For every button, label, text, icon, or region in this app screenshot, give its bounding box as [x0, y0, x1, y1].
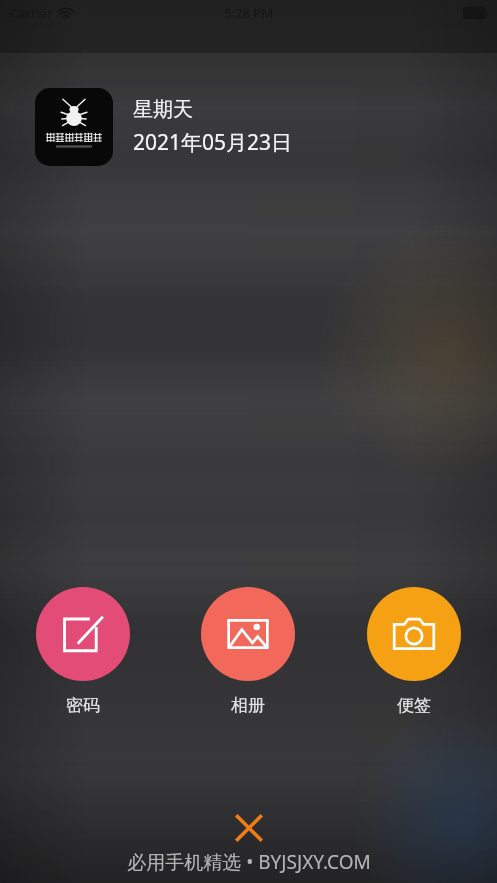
staticText: 密码	[66, 695, 100, 716]
button[interactable]: 便签	[367, 587, 461, 681]
button[interactable]: 关闭	[223, 802, 275, 854]
staticText: 2021年05月23日	[133, 128, 293, 157]
staticText: 5:28 PM	[224, 4, 274, 22]
button[interactable]: 相册	[201, 587, 295, 681]
staticText: 相册	[231, 695, 265, 716]
staticText: 必用手机精选 • BYJSJXY.COM	[127, 849, 371, 875]
staticText: 便签	[397, 695, 431, 716]
button[interactable]: 密码	[36, 587, 130, 681]
staticText: 星期天	[133, 97, 193, 122]
button[interactable]	[35, 88, 113, 166]
